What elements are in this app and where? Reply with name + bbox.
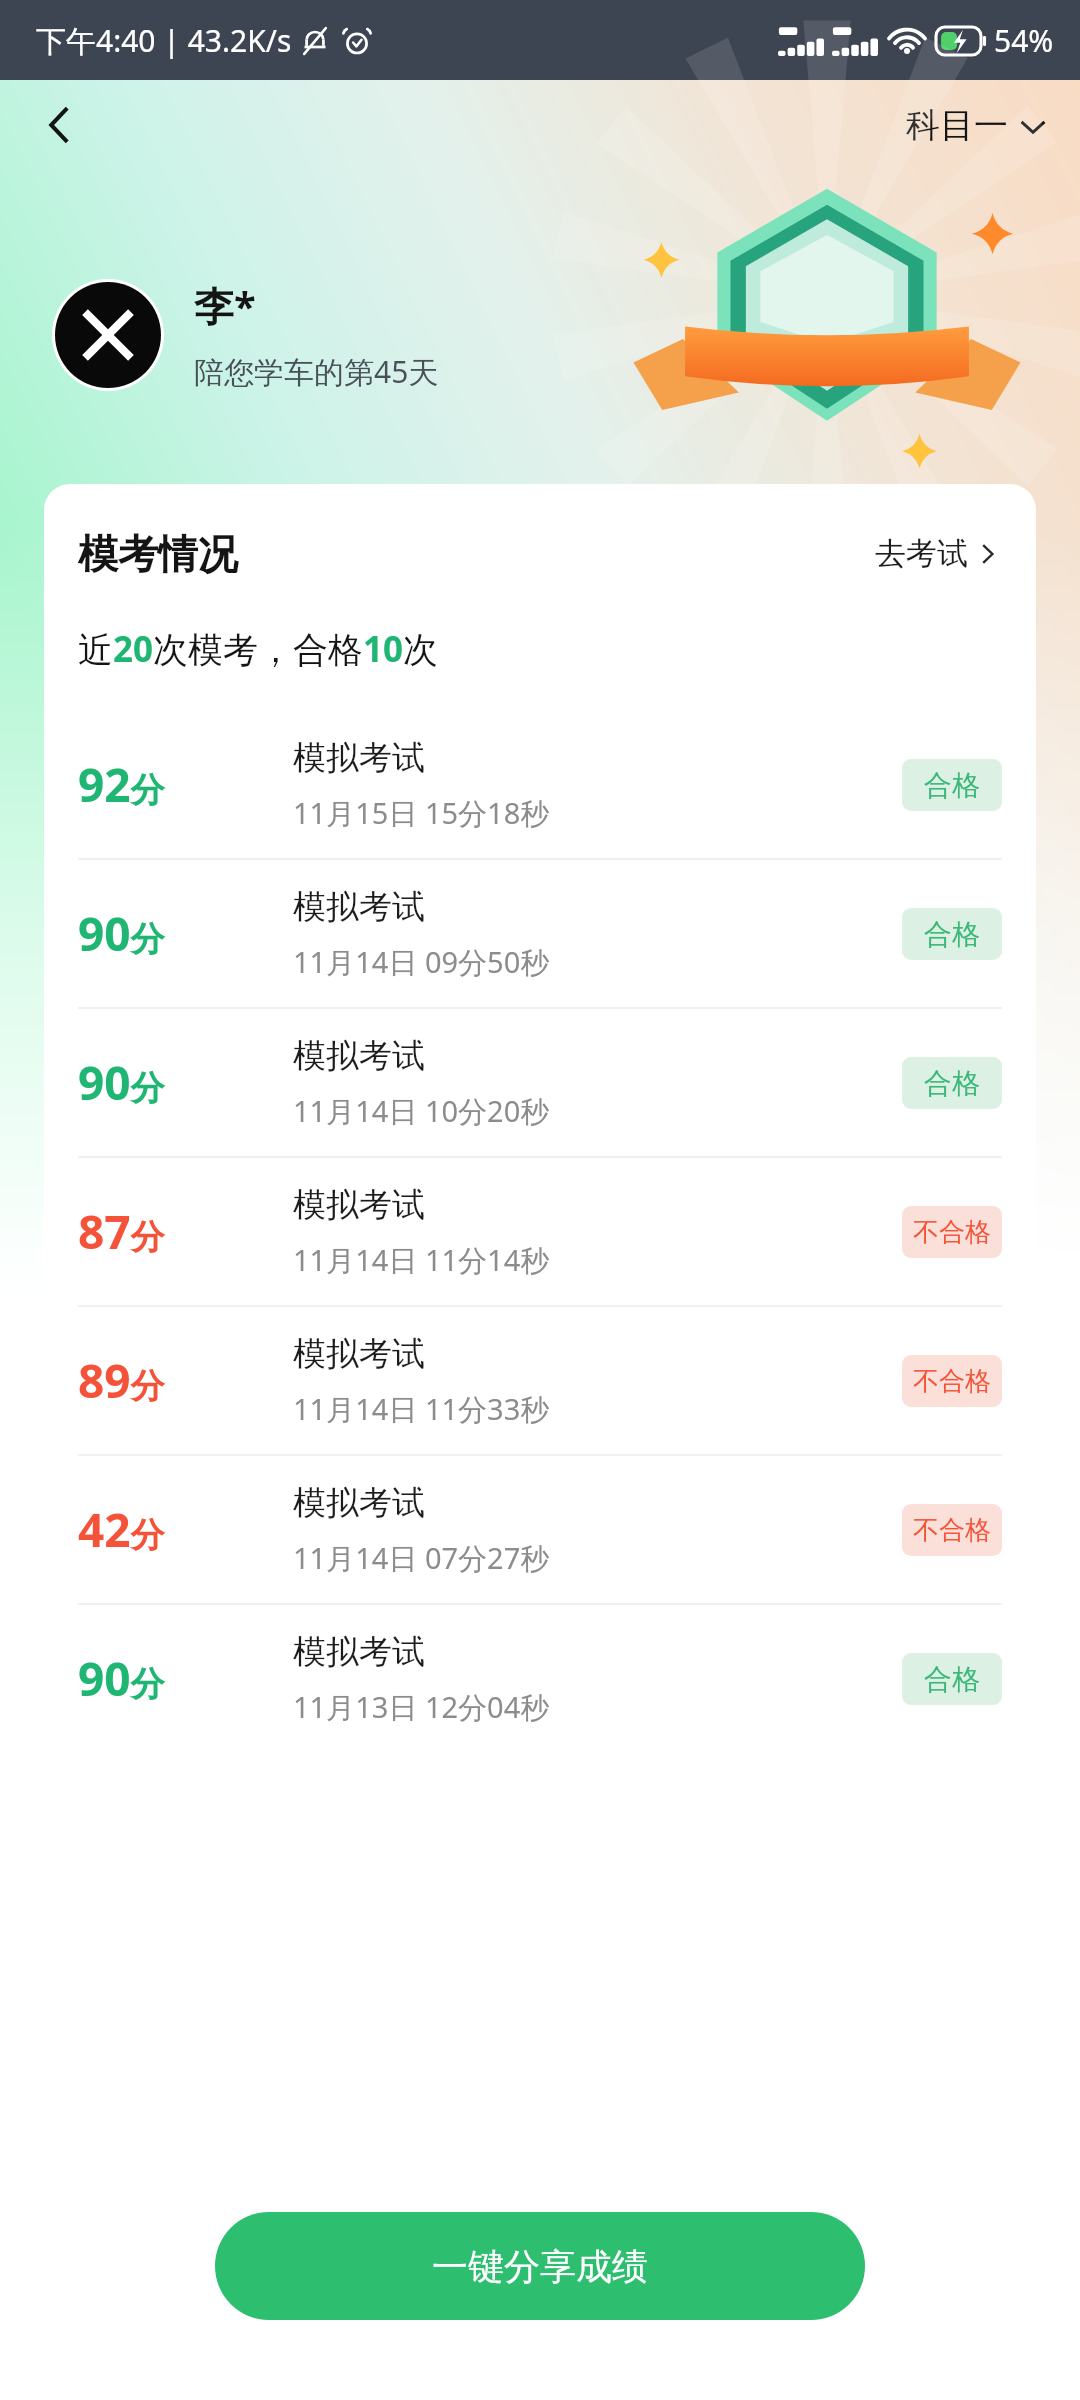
staticText: 11月13日 12分04秒 bbox=[293, 1687, 550, 1727]
button[interactable]: 90分 bbox=[44, 1009, 1036, 1156]
staticText: 11月14日 10分20秒 bbox=[293, 1091, 550, 1131]
staticText: 合格 bbox=[924, 917, 980, 952]
staticText: 90分 bbox=[78, 1051, 165, 1114]
staticText: 模拟考试 bbox=[293, 737, 425, 779]
staticText: 54% bbox=[994, 20, 1054, 61]
button[interactable]: 87分 bbox=[44, 1158, 1036, 1305]
staticText: 合格 bbox=[924, 1066, 980, 1101]
staticText: 不合格 bbox=[913, 1365, 991, 1398]
staticText: 87分 bbox=[78, 1200, 165, 1263]
button[interactable]: 42分 bbox=[44, 1456, 1036, 1603]
staticText: 42分 bbox=[78, 1498, 165, 1561]
staticText: 模拟考试 bbox=[293, 1184, 425, 1226]
staticText: 科目一 bbox=[906, 104, 1008, 147]
staticText: 陪您学车的第45天 bbox=[194, 351, 439, 392]
staticText: 模拟考试 bbox=[293, 1482, 425, 1524]
staticText: 11月15日 15分18秒 bbox=[293, 793, 550, 833]
staticText: 一键分享成绩 bbox=[432, 2244, 648, 2289]
staticText: 11月14日 11分14秒 bbox=[293, 1240, 550, 1280]
button[interactable]: 90分 bbox=[44, 860, 1036, 1007]
button[interactable]: Back bbox=[16, 81, 104, 169]
staticText: 下午4:40 | 43.2K/s bbox=[36, 20, 292, 61]
button[interactable]: 去考试 bbox=[871, 526, 1002, 581]
button[interactable]: 89分 bbox=[44, 1307, 1036, 1454]
staticText: 合格 bbox=[924, 1662, 980, 1697]
button[interactable]: 90分 bbox=[44, 1605, 1036, 1752]
staticText: 不合格 bbox=[913, 1216, 991, 1249]
staticText: 11月14日 07分27秒 bbox=[293, 1538, 550, 1578]
button[interactable]: 科目一 bbox=[900, 96, 1052, 155]
staticText: 92分 bbox=[78, 753, 165, 816]
staticText: 90分 bbox=[78, 1647, 165, 1710]
staticText: 模拟考试 bbox=[293, 1035, 425, 1077]
staticText: 90分 bbox=[78, 902, 165, 965]
staticText: 11月14日 09分50秒 bbox=[293, 942, 550, 982]
staticText: 合格 bbox=[924, 768, 980, 803]
button[interactable]: 一键分享成绩 bbox=[215, 2212, 865, 2320]
staticText: 模拟考试 bbox=[293, 1631, 425, 1673]
staticText: 近20次模考，合格10次 bbox=[78, 625, 439, 673]
staticText: 模考情况 bbox=[78, 529, 238, 579]
staticText: 89分 bbox=[78, 1349, 165, 1412]
staticText: 李* bbox=[194, 278, 256, 333]
staticText: 不合格 bbox=[913, 1514, 991, 1547]
staticText: 模拟考试 bbox=[293, 1333, 425, 1375]
staticText: 模拟考试 bbox=[293, 886, 425, 928]
staticText: 11月14日 11分33秒 bbox=[293, 1389, 550, 1429]
button[interactable]: 92分 bbox=[44, 711, 1036, 858]
staticText: 去考试 bbox=[875, 534, 968, 573]
